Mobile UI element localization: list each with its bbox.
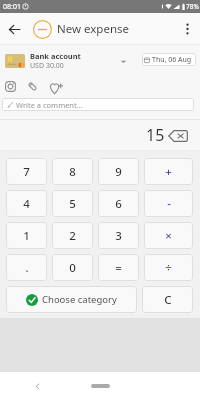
button[interactable]: More options	[174, 16, 200, 42]
staticText: .	[25, 260, 29, 276]
staticText: -	[167, 196, 171, 212]
button[interactable]: Add photo	[4, 80, 16, 92]
button[interactable]: -	[144, 190, 193, 217]
staticText: New expense	[57, 21, 130, 37]
staticText: 6	[115, 196, 122, 212]
button[interactable]: +	[144, 158, 193, 185]
staticText: 8	[69, 164, 76, 180]
staticText: ÷	[165, 260, 172, 276]
staticText: 78%	[186, 2, 199, 11]
button[interactable]: 0	[52, 254, 93, 281]
staticText: 3	[115, 228, 122, 244]
button[interactable]: Write a comment...	[2, 98, 194, 111]
staticText: Write a comment...	[16, 100, 83, 110]
staticText: Choose category	[42, 293, 117, 306]
button[interactable]: 1	[6, 222, 47, 249]
button[interactable]: .	[6, 254, 47, 281]
button[interactable]: 8	[52, 158, 93, 185]
staticText: 7	[23, 164, 30, 180]
button[interactable]: 4	[6, 190, 47, 217]
staticText: +	[165, 164, 172, 180]
button[interactable]: 2	[52, 222, 93, 249]
staticText: 08:01	[3, 2, 21, 12]
staticText: Thu, 06 Aug	[152, 55, 192, 65]
staticText: 5	[69, 196, 76, 212]
staticText: 15	[146, 124, 165, 146]
button[interactable]: Thu, 06 Aug	[142, 53, 196, 66]
button[interactable]: Add to favorites	[49, 80, 65, 96]
staticText: ×	[165, 228, 172, 244]
staticText: 2	[69, 228, 76, 244]
button[interactable]: Backspace	[166, 127, 190, 145]
button[interactable]: Expense type	[32, 19, 52, 39]
button[interactable]: Bank account	[0, 50, 127, 72]
button[interactable]: =	[98, 254, 139, 281]
staticText: Bank account	[30, 51, 81, 61]
staticText: C	[164, 292, 172, 308]
button[interactable]: 7	[6, 158, 47, 185]
staticText: USD 30.00	[30, 61, 64, 71]
button[interactable]: 9	[98, 158, 139, 185]
staticText: 1	[23, 228, 30, 244]
button[interactable]: C	[142, 286, 193, 313]
button[interactable]: 3	[98, 222, 139, 249]
button[interactable]: Back	[2, 17, 26, 41]
staticText: =	[115, 260, 122, 276]
staticText: 4	[23, 196, 30, 212]
button[interactable]: ×	[144, 222, 193, 249]
button[interactable]: 5	[52, 190, 93, 217]
button[interactable]: Back	[30, 379, 44, 393]
button[interactable]: ÷	[144, 254, 193, 281]
button[interactable]: Edit	[26, 80, 38, 92]
button[interactable]: Choose category	[6, 286, 137, 313]
staticText: 0	[69, 260, 76, 276]
button[interactable]: 6	[98, 190, 139, 217]
staticText: 9	[115, 164, 122, 180]
